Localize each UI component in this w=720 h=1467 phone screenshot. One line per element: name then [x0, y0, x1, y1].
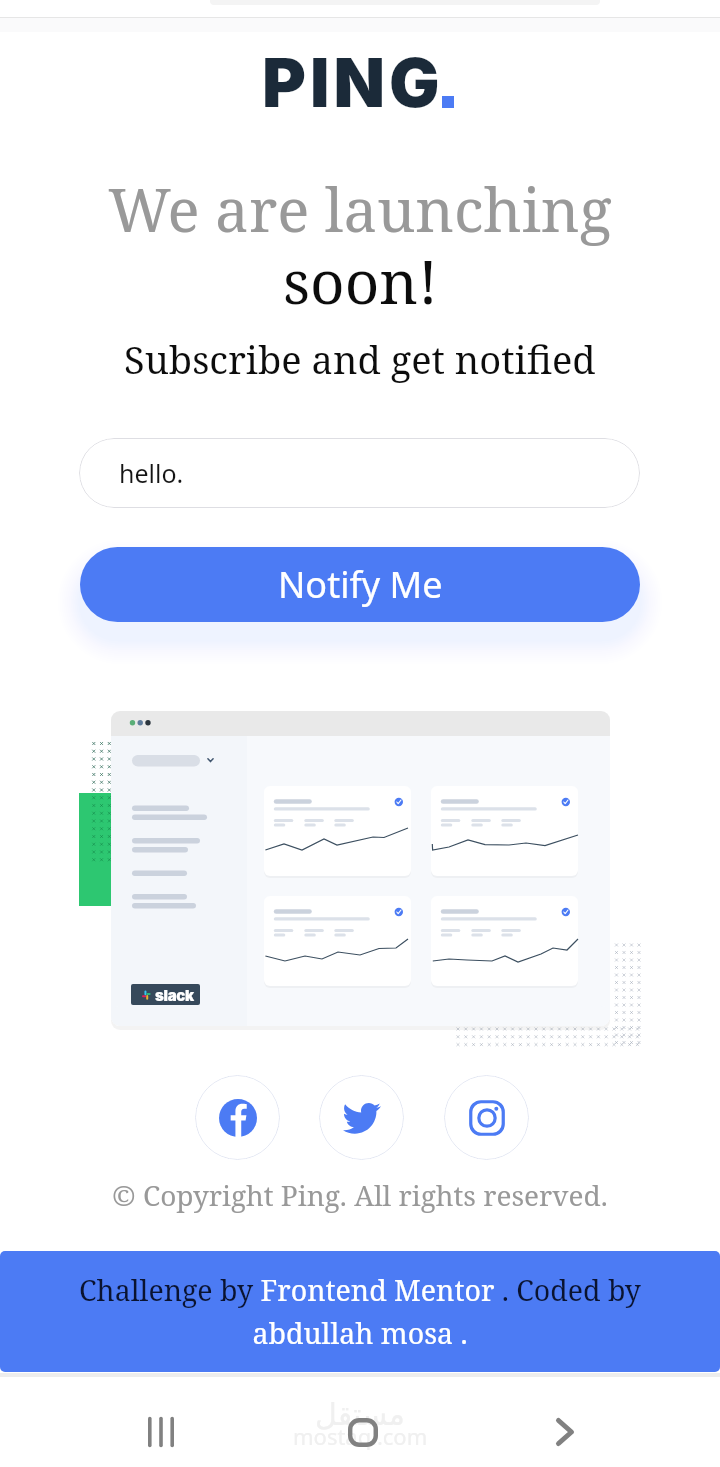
staticText: Subscribe and get notified — [124, 333, 596, 385]
button[interactable]: Recent apps — [131, 1402, 191, 1462]
button[interactable]: Twitter — [319, 1075, 404, 1160]
button[interactable]: Notify Me — [80, 547, 640, 622]
button[interactable]: Home — [333, 1402, 393, 1462]
button[interactable]: hello. — [79, 438, 640, 508]
button[interactable]: Facebook — [195, 1075, 280, 1160]
staticText: slack — [155, 986, 194, 1004]
staticText: © Copyright Ping. All rights reserved. — [112, 1176, 608, 1214]
staticText: Notify Me — [278, 560, 443, 609]
button[interactable]: Back — [535, 1402, 595, 1462]
staticText: PING — [262, 42, 444, 123]
staticText: soon! — [283, 240, 438, 322]
button[interactable]: Challenge by Frontend Mentor . Coded by … — [0, 1251, 720, 1372]
button[interactable]: Instagram — [444, 1075, 529, 1160]
staticText: mostaql.com — [293, 1421, 428, 1451]
staticText: مستقل — [315, 1397, 405, 1432]
staticText: hello. — [119, 456, 184, 490]
staticText: Challenge by Frontend Mentor . Coded by … — [40, 1271, 680, 1352]
staticText: We are launching — [108, 168, 612, 250]
